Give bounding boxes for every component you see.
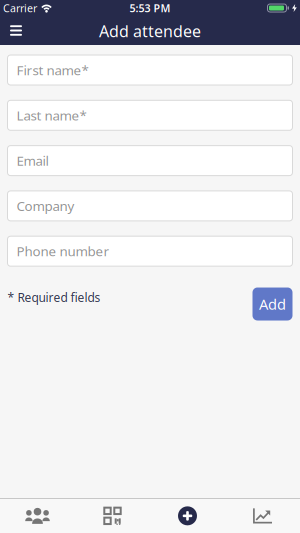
staticText: * Required fields [7,289,100,305]
staticText: Add attendee [99,20,201,42]
button[interactable]: Add attendee [150,499,225,533]
button[interactable]: Stats [225,499,300,533]
button[interactable]: Attendees [0,499,75,533]
button[interactable]: Phone number [7,236,292,266]
button[interactable]: Scan [75,499,150,533]
staticText: Last name* [16,106,86,124]
button[interactable]: Menu [0,16,32,45]
staticText: Company [16,197,74,215]
staticText: Add [259,294,286,314]
button[interactable]: Last name* [7,100,292,130]
staticText: 5:53 PM [129,1,170,15]
staticText: Phone number [16,242,109,260]
staticText: Email [16,152,48,169]
button[interactable]: Add [252,287,292,320]
button[interactable]: First name* [7,55,292,85]
button[interactable]: Email [7,146,292,176]
staticText: Carrier [3,1,37,15]
staticText: First name* [16,61,88,79]
button[interactable]: Company [7,191,292,221]
